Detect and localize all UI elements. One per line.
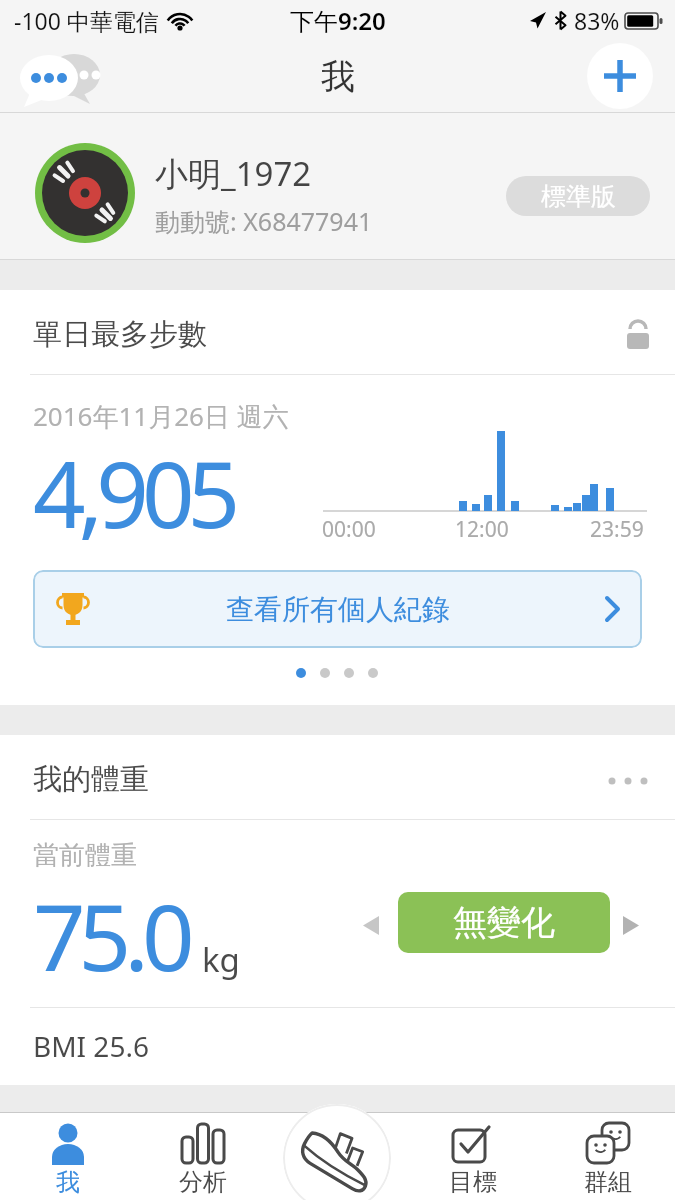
button[interactable] (20, 48, 104, 108)
staticText: 目標 (449, 1167, 497, 1197)
staticText: 群組 (584, 1167, 632, 1197)
staticText: kg (202, 937, 240, 982)
staticText: 2016年11月26日 週六 (33, 398, 289, 434)
staticText: 標準版 (541, 181, 616, 212)
staticText: 83% (574, 5, 620, 36)
staticText: 小明_1972 (155, 151, 312, 196)
button[interactable] (587, 43, 653, 109)
staticText: 我 (321, 55, 355, 98)
staticText: 查看所有個人紀錄 (226, 592, 450, 627)
staticText: 我的體重 (33, 761, 149, 798)
staticText: 12:00 (455, 515, 509, 544)
button[interactable]: 查看所有個人紀錄 (33, 570, 642, 648)
staticText: -100 中華電信 (14, 5, 159, 36)
button[interactable]: 分析 (135, 1112, 270, 1200)
button[interactable]: 小明_1972 (0, 113, 675, 259)
staticText: 分析 (179, 1167, 227, 1197)
button[interactable] (283, 1104, 391, 1200)
button[interactable]: 無變化 (398, 892, 610, 953)
button[interactable]: 我 (0, 1112, 135, 1200)
staticText: 我 (56, 1167, 80, 1197)
staticText: 4,905 (33, 430, 234, 555)
staticText: 75.0 (33, 873, 188, 998)
button[interactable]: 目標 (405, 1112, 540, 1200)
staticText: 動動號: X68477941 (155, 204, 373, 238)
staticText: 23:59 (590, 515, 644, 544)
button[interactable]: 群組 (540, 1112, 675, 1200)
staticText: 00:00 (322, 515, 376, 544)
staticText: 無變化 (453, 901, 555, 944)
staticText: 當前體重 (33, 839, 137, 872)
staticText: 單日最多步數 (33, 316, 207, 353)
staticText: 下午9:20 (290, 4, 386, 37)
staticText: BMI 25.6 (33, 1027, 149, 1065)
